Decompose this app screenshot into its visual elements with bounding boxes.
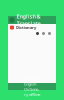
staticText: English & Translate xyxy=(16,13,40,27)
staticText: Dictionary xyxy=(16,25,36,30)
staticText: Tamil — English Dictionary offline xyxy=(24,76,40,97)
